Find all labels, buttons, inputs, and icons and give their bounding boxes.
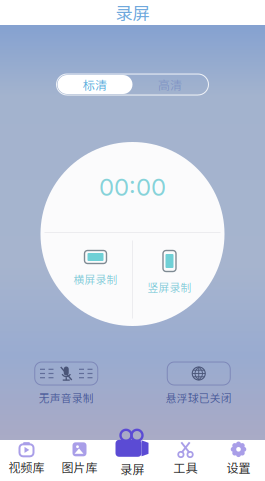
button[interactable]: 工具 (159, 440, 212, 481)
button[interactable]: 横屏录制 (59, 233, 132, 325)
staticText: 悬浮球已关闭 (166, 390, 232, 405)
button[interactable]: 录屏 (106, 426, 159, 481)
button[interactable]: 竖屏录制 (133, 233, 206, 325)
button[interactable]: 图片库 (53, 440, 106, 481)
staticText: 图片库 (61, 458, 97, 476)
staticText: 设置 (226, 459, 250, 476)
staticText: 录屏 (115, 0, 149, 25)
staticText: 横屏录制 (73, 271, 117, 287)
staticText: 竖屏录制 (147, 279, 191, 295)
button[interactable]: 无声音录制 (35, 362, 98, 405)
button[interactable]: 悬浮球已关闭 (166, 362, 232, 405)
staticText: 视频库 (8, 458, 44, 476)
button[interactable]: 设置 (212, 440, 265, 481)
staticText: 00:00 (99, 172, 166, 201)
staticText: 标清 (83, 76, 107, 93)
staticText: 录屏 (120, 460, 144, 478)
staticText: 无声音录制 (39, 390, 94, 405)
button[interactable]: 高清 (132, 75, 207, 94)
button[interactable]: 视频库 (0, 440, 53, 481)
staticText: 工具 (173, 459, 197, 476)
staticText: 高清 (158, 76, 182, 93)
button[interactable]: 标清 (57, 75, 132, 94)
